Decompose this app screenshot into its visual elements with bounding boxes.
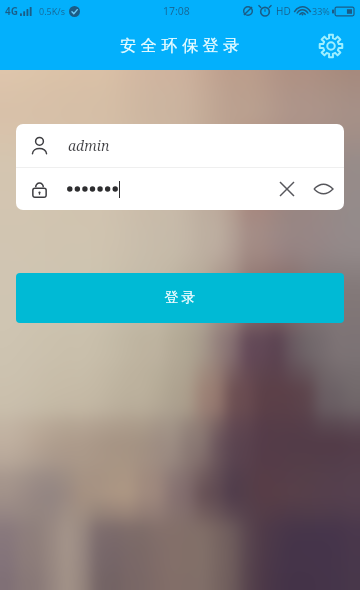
button[interactable]: admin (16, 124, 344, 167)
staticText: 安全环保登录 (120, 36, 244, 56)
staticText: HD (276, 4, 291, 18)
staticText: 33% (312, 5, 330, 17)
staticText: 4G (5, 4, 18, 18)
staticText: 17:08 (163, 4, 190, 18)
staticText: 0.5K/s (39, 5, 65, 17)
staticText: 登录 (163, 289, 197, 307)
button[interactable]: Show password (305, 171, 341, 207)
button[interactable]: Settings (314, 29, 348, 63)
button[interactable]: Clear text (269, 171, 305, 207)
button[interactable]: 登录 (16, 273, 344, 323)
staticText: admin (68, 136, 110, 155)
